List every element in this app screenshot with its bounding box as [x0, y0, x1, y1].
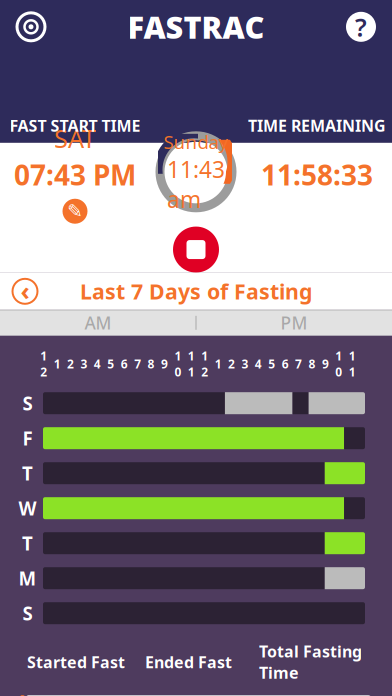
staticText: 11:58:33	[261, 156, 373, 193]
staticText: 4	[255, 356, 262, 372]
staticText: Ended Fast	[145, 651, 232, 672]
button[interactable]: Edit fast start time	[58, 194, 92, 228]
button[interactable]: Previous	[3, 274, 47, 308]
staticText: 07:43 PM	[14, 156, 136, 193]
staticText: TIME REMAINING	[248, 115, 386, 136]
staticText: 8	[147, 356, 154, 372]
staticText: 2	[228, 356, 235, 372]
staticText: S	[22, 601, 32, 626]
staticText: AM	[84, 311, 111, 334]
staticText: S	[22, 391, 32, 416]
staticText: M	[18, 566, 36, 591]
staticText: 10	[174, 348, 181, 380]
staticText: 5	[268, 356, 275, 372]
staticText: 6	[121, 356, 128, 372]
staticText: ‹	[20, 273, 29, 307]
staticText: 7	[295, 356, 302, 372]
staticText: ?	[355, 10, 367, 44]
staticText: 12	[201, 348, 208, 380]
staticText: 1	[215, 356, 222, 372]
button[interactable]: Help	[338, 4, 384, 50]
staticText: 3	[80, 356, 87, 372]
staticText: T	[22, 461, 33, 486]
staticText: FAST START TIME	[9, 115, 140, 136]
staticText: 7	[134, 356, 141, 372]
staticText: 2	[67, 356, 74, 372]
staticText: 10	[335, 348, 342, 380]
staticText: Last 7 Days of Fasting	[80, 277, 312, 305]
staticText: SAT	[54, 121, 96, 155]
staticText: FASTRAC	[127, 6, 264, 47]
staticText: 9	[322, 356, 329, 372]
staticText: 8	[308, 356, 315, 372]
staticText: 5	[107, 356, 114, 372]
staticText: Stop	[172, 278, 219, 306]
staticText: 9	[161, 356, 168, 372]
staticText: 11:43 am	[167, 154, 225, 214]
button[interactable]: Settings	[8, 4, 54, 50]
staticText: 6	[282, 356, 289, 372]
staticText: F	[22, 426, 32, 451]
staticText: 3	[241, 356, 248, 372]
staticText: 11	[188, 348, 195, 380]
staticText: T	[22, 531, 33, 556]
staticText: PM	[280, 311, 307, 334]
staticText: 1	[54, 356, 61, 372]
staticText: Total Fasting Time	[259, 641, 362, 683]
staticText: Started Fast	[27, 651, 125, 672]
staticText: 11	[349, 348, 356, 380]
staticText: 12	[40, 348, 47, 380]
staticText: Sunday	[163, 129, 228, 154]
staticText: W	[18, 496, 36, 521]
staticText: ✎	[67, 201, 83, 222]
staticText	[313, 121, 320, 155]
button[interactable]: Stop	[151, 228, 241, 304]
staticText: 4	[94, 356, 101, 372]
